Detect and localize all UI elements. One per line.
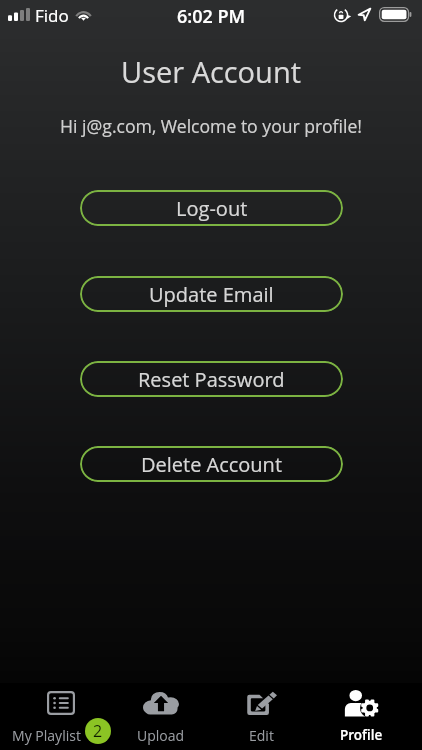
staticText: Upload bbox=[137, 726, 185, 745]
button[interactable]: Log-out bbox=[80, 190, 343, 226]
staticText: 2 bbox=[93, 720, 103, 742]
staticText: Hi j@g.com, Welcome to your profile! bbox=[0, 114, 422, 138]
button[interactable]: Upload bbox=[111, 683, 211, 750]
button[interactable]: Update Email bbox=[80, 276, 343, 312]
staticText: User Account bbox=[0, 52, 422, 91]
staticText: Profile bbox=[340, 726, 383, 744]
staticText: Update Email bbox=[149, 281, 274, 308]
button[interactable]: Reset Password bbox=[80, 361, 343, 397]
other: Rotation lock bbox=[334, 7, 350, 23]
other: Location bbox=[358, 8, 371, 21]
staticText: My Playlist bbox=[12, 726, 81, 745]
other: Battery bbox=[379, 7, 412, 22]
button[interactable]: Delete Account bbox=[80, 446, 343, 482]
staticText: Delete Account bbox=[141, 451, 282, 478]
button[interactable]: Profile bbox=[311, 683, 411, 750]
staticText: Fido bbox=[35, 4, 69, 27]
button[interactable]: My Playlist bbox=[11, 683, 111, 750]
button[interactable]: Edit bbox=[211, 683, 311, 750]
staticText: 6:02 PM bbox=[0, 4, 422, 29]
staticText: Log-out bbox=[176, 195, 248, 222]
staticText: Edit bbox=[249, 726, 274, 745]
staticText: Reset Password bbox=[138, 366, 285, 393]
